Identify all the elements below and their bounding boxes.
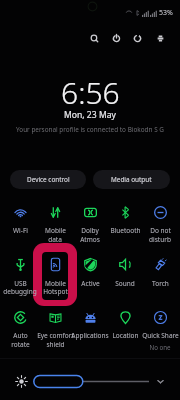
staticText: disturb bbox=[149, 235, 171, 244]
staticText: Sound bbox=[115, 279, 135, 288]
staticText: rotate bbox=[11, 340, 30, 349]
staticText: Device control bbox=[27, 175, 70, 184]
staticText: Mobile bbox=[45, 279, 66, 288]
button[interactable]: Active bbox=[73, 251, 108, 297]
staticText: Bluetooth bbox=[110, 226, 141, 235]
staticText: Mon, 23 May bbox=[64, 109, 116, 121]
staticText: Atmos bbox=[80, 235, 100, 244]
staticText: shield bbox=[46, 340, 65, 349]
staticText: Dolby bbox=[81, 226, 99, 235]
staticText: 53% bbox=[159, 8, 173, 18]
staticText: Hotspot bbox=[43, 287, 68, 296]
button[interactable]: Wi-Fi bbox=[3, 198, 38, 244]
button[interactable]: Quick Share bbox=[143, 303, 178, 349]
staticText: Wi-Fi bbox=[13, 226, 28, 235]
button[interactable]: Search bbox=[83, 27, 105, 49]
button[interactable]: USB debugging bbox=[3, 251, 38, 297]
button[interactable]: Media output bbox=[93, 170, 170, 189]
staticText: Active bbox=[81, 279, 100, 288]
staticText: Your personal profile is connected to Bi… bbox=[16, 125, 164, 134]
button[interactable]: Auto rotate bbox=[3, 303, 38, 349]
staticText: Media output bbox=[111, 175, 152, 184]
staticText: Location bbox=[112, 331, 139, 340]
button[interactable]: Restart bbox=[126, 27, 148, 49]
staticText: debugging bbox=[3, 287, 37, 296]
button[interactable]: Bluetooth bbox=[108, 198, 143, 244]
button[interactable]: Sound bbox=[108, 251, 143, 297]
button[interactable]: Applications bbox=[73, 303, 108, 349]
staticText: Applications bbox=[71, 331, 109, 340]
staticText: Auto bbox=[13, 331, 28, 340]
staticText: Mobile bbox=[45, 226, 66, 235]
staticText: USB bbox=[14, 279, 27, 288]
staticText: Quick Share bbox=[142, 331, 179, 340]
button[interactable]: Expand quick settings bbox=[153, 374, 167, 388]
staticText: No one bbox=[149, 343, 171, 351]
staticText: Eye comfort bbox=[37, 331, 74, 340]
button[interactable]: Eye comfort shield bbox=[38, 303, 73, 349]
button[interactable]: Quick settings menu bbox=[149, 27, 171, 49]
button[interactable]: Brightness bbox=[33, 374, 153, 389]
button[interactable]: Mobile data bbox=[38, 198, 73, 244]
button[interactable]: Torch bbox=[143, 251, 178, 297]
staticText: data bbox=[48, 235, 62, 244]
button[interactable]: Dolby Atmos bbox=[73, 198, 108, 244]
button[interactable]: Mobile Hotspot bbox=[38, 251, 73, 297]
staticText: 6:56 bbox=[61, 72, 120, 113]
button[interactable]: Do not disturb bbox=[143, 198, 178, 244]
button[interactable]: Device control bbox=[10, 170, 86, 189]
button[interactable]: Power off bbox=[105, 27, 127, 49]
staticText: Torch bbox=[152, 279, 169, 288]
button[interactable]: Location bbox=[108, 303, 143, 349]
staticText: Do not bbox=[150, 226, 171, 235]
